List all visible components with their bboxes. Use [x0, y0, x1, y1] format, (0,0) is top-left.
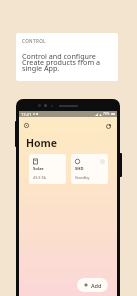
button[interactable]: SHD — [71, 154, 108, 184]
staticText: SHD — [75, 166, 84, 172]
staticText: Control and configure Create products fr… — [22, 51, 101, 73]
staticText: Solar — [33, 166, 44, 172]
button[interactable]: CONTROL — [16, 33, 118, 81]
staticText: CONTROL — [22, 38, 46, 44]
button[interactable]: Menu — [21, 120, 32, 131]
staticText: 17:21 — [21, 112, 32, 117]
staticText: 79% — [103, 112, 110, 116]
staticText: Standby — [75, 175, 90, 180]
staticText: Add — [91, 282, 102, 289]
button[interactable]: Account — [102, 120, 114, 132]
staticText: Home — [26, 136, 58, 150]
button[interactable]: Solar — [29, 154, 66, 184]
button[interactable]: Add — [77, 278, 108, 292]
staticText: 43.3 Kb — [33, 175, 47, 180]
